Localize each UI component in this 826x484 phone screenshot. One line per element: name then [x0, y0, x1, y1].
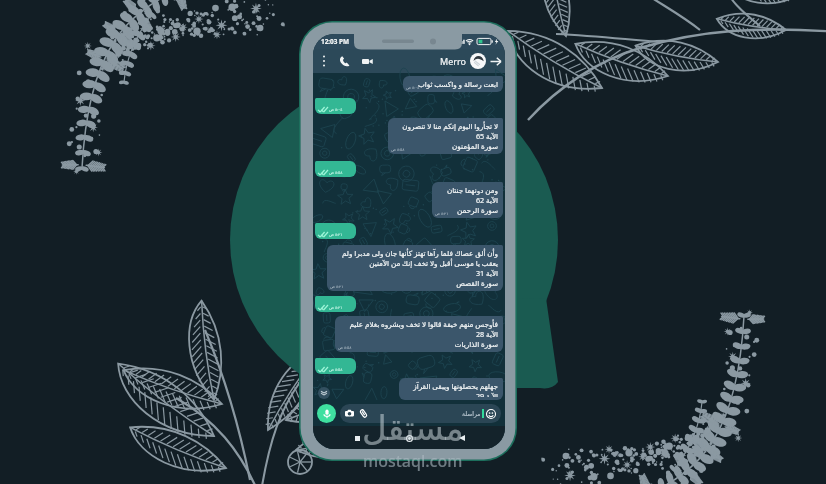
button[interactable]: Profile photo [470, 53, 486, 69]
staticText: ابعت رسالة و واكسب ثواب [417, 79, 498, 89]
button[interactable]: ٨:٢١ ص [315, 296, 356, 312]
staticText: الآية 62 [475, 195, 498, 205]
staticText: وأن ألق عصاك فلما رآها تهتز كأنها جان ول… [341, 248, 498, 258]
button[interactable]: فأوجس منهم خيفة قالوا لا تخف وبشروه بغلا… [335, 316, 503, 352]
staticText: ومن دونهما جنتان [446, 185, 498, 195]
button[interactable]: Home [400, 429, 418, 447]
staticText: ٨:٢١ ص [329, 305, 343, 310]
staticText: ٨:٢١ ص [329, 232, 343, 237]
staticText: سورة الذاريات [454, 339, 498, 349]
staticText: يعقب يا موسى أقبل ولا تخف إنك من الآمنين [369, 258, 498, 268]
button[interactable]: ابعت رسالة و واكسب ثواب [403, 76, 503, 92]
button[interactable]: وأن ألق عصاك فلما رآها تهتز كأنها جان ول… [327, 245, 503, 291]
staticText: لا تجأروا اليوم إنكم منا لا تنصرون [402, 121, 498, 131]
staticText: 12:03 PM [321, 37, 350, 46]
staticText: سورة المؤمنون [452, 141, 498, 151]
button[interactable]: جهلهم يحصلونها ويبقى القرآز [399, 378, 503, 400]
staticText: سورة الرحمن [456, 205, 498, 215]
staticText: ٨:٥٨ ص [338, 345, 352, 350]
button[interactable]: Video call [359, 53, 375, 69]
staticText: الآية 28 [475, 329, 498, 339]
staticText: ٨:٢١ ص [435, 211, 449, 216]
staticText: مراسلة [462, 410, 481, 417]
staticText: جهلهم يحصلونها ويبقى القرآز [413, 381, 498, 391]
button[interactable]: لا تجأروا اليوم إنكم منا لا تنصرون [388, 118, 503, 154]
button[interactable]: ٨:٥٨ ص [315, 358, 356, 374]
staticText: ٨:٥٨ ص [329, 170, 343, 175]
staticText: الآية 31 [475, 268, 498, 278]
button[interactable]: Merro [440, 55, 466, 67]
button[interactable]: Voice call [336, 53, 352, 69]
button[interactable]: ٨:٢١ ص [315, 223, 356, 239]
staticText: الآية 29 [475, 391, 498, 397]
staticText: ٨:٢١ ص [330, 284, 344, 289]
button[interactable]: مراسلة [340, 404, 501, 423]
staticText: ٨:٠٤ ص [329, 107, 343, 112]
button[interactable]: ومن دونهما جنتان [432, 182, 503, 218]
staticText: الآية 65 [475, 131, 498, 141]
button[interactable]: Back [453, 429, 471, 447]
staticText: سورة القصص [456, 278, 498, 288]
button[interactable]: Scroll to bottom [318, 387, 330, 399]
staticText: ٨:٠٤ ص [406, 85, 420, 90]
staticText: ٨:٥٨ ص [391, 147, 405, 152]
button[interactable]: ٨:٠٤ ص [315, 98, 356, 114]
button[interactable]: Recent apps [348, 429, 366, 447]
staticText: mostaql.com [363, 450, 463, 472]
button[interactable]: ٨:٥٨ ص [315, 161, 356, 177]
staticText: ٨:٥٨ ص [329, 367, 343, 372]
button[interactable]: Back [488, 54, 503, 69]
staticText: مستقل [362, 408, 464, 448]
button[interactable]: Voice message [317, 404, 336, 423]
button[interactable]: More options [316, 53, 332, 69]
staticText: فأوجس منهم خيفة قالوا لا تخف وبشروه بغلا… [349, 319, 498, 329]
